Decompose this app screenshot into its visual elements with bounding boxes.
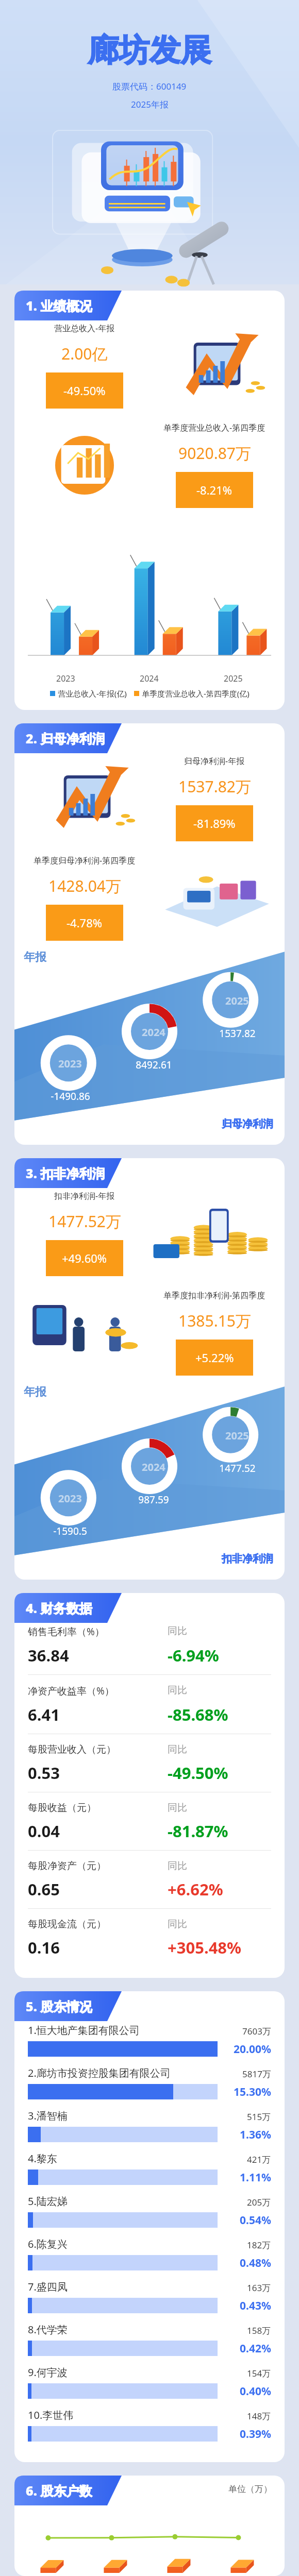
staticText: 0.48% — [240, 2256, 271, 2270]
staticText: 6.41 — [28, 1704, 168, 1725]
staticText: 2024 — [142, 1025, 165, 1039]
staticText: 1.11% — [240, 2170, 271, 2185]
staticText: 同比 — [168, 1743, 271, 1756]
staticText: 5817万 — [242, 2068, 271, 2080]
staticText: 3. 扣非净利润 — [26, 1164, 105, 1182]
button[interactable]: 6.陈复兴 — [28, 2237, 271, 2280]
staticText: 5. 股东情况 — [26, 1997, 92, 2015]
staticText: 1537.82 — [219, 1027, 256, 1040]
staticText: 廊坊发展 — [88, 31, 211, 70]
button[interactable]: 1.恒大地产集团有限公司 — [28, 2023, 271, 2066]
staticText: 6. 股东户数 — [26, 2482, 92, 2499]
staticText: 每股现金流（元） — [28, 1918, 168, 1930]
staticText: +6.62% — [168, 1878, 271, 1900]
button[interactable]: 每股收益（元） — [28, 1802, 271, 1850]
staticText: 单季度扣非净利润-第四季度 — [163, 1290, 265, 1301]
staticText: 同比 — [168, 1860, 271, 1872]
staticText: 421万 — [247, 2154, 271, 2165]
staticText: 0.16 — [28, 1937, 168, 1958]
staticText: +305.48% — [168, 1937, 271, 1958]
button[interactable]: 10.李世伟 — [28, 2408, 271, 2451]
staticText: -49.50% — [168, 1762, 271, 1784]
button[interactable]: 8.代学荣 — [28, 2323, 271, 2365]
staticText: 2023 — [56, 673, 75, 684]
staticText: 15.30% — [234, 2084, 271, 2099]
staticText: 0.39% — [240, 2427, 271, 2442]
staticText: 2025 — [225, 994, 249, 1008]
staticText: 同比 — [168, 1802, 271, 1814]
staticText: 4.黎东 — [28, 2151, 247, 2165]
staticText: 20.00% — [234, 2042, 271, 2057]
staticText: 年报 — [24, 950, 46, 964]
staticText: -81.89% — [193, 816, 236, 831]
staticText: 9020.87万 — [178, 443, 251, 464]
staticText: 2025 — [224, 673, 243, 684]
staticText: 205万 — [247, 2196, 271, 2208]
button[interactable]: 7.盛四凤 — [28, 2280, 271, 2323]
staticText: 0.53 — [28, 1762, 168, 1784]
staticText: -85.68% — [168, 1704, 271, 1725]
button[interactable]: 5. 股东情况 — [14, 1991, 132, 2021]
staticText: 6.陈复兴 — [28, 2237, 247, 2251]
staticText: -1490.86 — [51, 1090, 90, 1103]
staticText: -1590.5 — [53, 1524, 87, 1538]
staticText: -4.78% — [67, 915, 103, 930]
button[interactable]: 3.潘智楠 — [28, 2109, 271, 2151]
staticText: 0.04 — [28, 1820, 168, 1842]
staticText: 单季度营业总收入-第四季度(亿) — [142, 688, 250, 699]
staticText: 2.廊坊市投资控股集团有限公司 — [28, 2066, 242, 2080]
staticText: 1428.04万 — [48, 875, 121, 896]
staticText: 1.36% — [240, 2127, 271, 2142]
staticText: 每股收益（元） — [28, 1802, 168, 1814]
button[interactable]: 每股净资产（元） — [28, 1860, 271, 1908]
staticText: 182万 — [247, 2239, 271, 2251]
staticText: 163万 — [247, 2282, 271, 2294]
staticText: 1477.52万 — [48, 1211, 121, 1232]
staticText: 扣非净利润-年报 — [54, 1190, 115, 1201]
staticText: 2024 — [142, 1460, 165, 1474]
staticText: 515万 — [247, 2111, 271, 2123]
staticText: 单位（万） — [228, 2484, 272, 2495]
button[interactable]: 9.何宇波 — [28, 2365, 271, 2408]
staticText: -6.94% — [168, 1645, 271, 1666]
staticText: 5.陆宏娣 — [28, 2194, 247, 2208]
button[interactable]: 6. 股东户数 — [14, 2476, 132, 2505]
staticText: 1.恒大地产集团有限公司 — [28, 2023, 242, 2037]
staticText: 2025 — [225, 1429, 249, 1443]
staticText: 2024 — [140, 673, 159, 684]
button[interactable]: 2. 归母净利润 — [14, 723, 132, 753]
button[interactable]: 5.陆宏娣 — [28, 2194, 271, 2237]
staticText: -8.21% — [196, 482, 232, 498]
staticText: 1385.15万 — [178, 1310, 251, 1331]
staticText: 营业总收入-年报 — [54, 323, 115, 334]
button[interactable]: 净资产收益率（%） — [28, 1684, 271, 1734]
staticText: 3.潘智楠 — [28, 2109, 247, 2123]
staticText: 1. 业绩概况 — [26, 297, 92, 314]
staticText: 同比 — [168, 1625, 271, 1637]
button[interactable]: 销售毛利率（%） — [28, 1625, 271, 1674]
staticText: 0.65 — [28, 1878, 168, 1900]
button[interactable]: 每股现金流（元） — [28, 1918, 271, 1967]
button[interactable]: 1. 业绩概况 — [14, 291, 132, 320]
staticText: 36.84 — [28, 1645, 168, 1666]
staticText: 1477.52 — [219, 1462, 256, 1475]
button[interactable]: 4.黎东 — [28, 2151, 271, 2194]
staticText: 154万 — [247, 2367, 271, 2379]
staticText: 归母净利润 — [222, 1117, 273, 1130]
staticText: 0.54% — [240, 2213, 271, 2228]
staticText: 10.李世伟 — [28, 2408, 247, 2422]
staticText: 7.盛四凤 — [28, 2280, 247, 2294]
staticText: 单季度归母净利润-第四季度 — [34, 855, 136, 866]
staticText: +5.22% — [195, 1350, 234, 1365]
button[interactable]: 每股营业收入（元） — [28, 1743, 271, 1792]
staticText: 9.何宇波 — [28, 2365, 247, 2379]
staticText: +49.60% — [62, 1250, 107, 1266]
staticText: -81.87% — [168, 1820, 271, 1842]
staticText: 净资产收益率（%） — [28, 1684, 168, 1698]
button[interactable]: 3. 扣非净利润 — [14, 1158, 132, 1188]
button[interactable]: 4. 财务数据 — [14, 1593, 132, 1623]
staticText: 同比 — [168, 1918, 271, 1930]
button[interactable]: 2.廊坊市投资控股集团有限公司 — [28, 2066, 271, 2109]
staticText: 2023 — [58, 1057, 82, 1071]
staticText: 归母净利润-年报 — [184, 755, 245, 767]
